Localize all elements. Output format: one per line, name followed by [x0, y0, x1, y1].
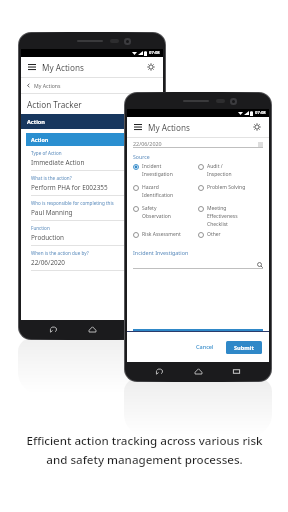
staticText: Other — [207, 231, 221, 238]
button[interactable]: Other — [198, 231, 263, 239]
button[interactable]: Settings — [251, 121, 263, 133]
staticText: Type of Action — [31, 150, 62, 156]
staticText: 22/06/2020 — [133, 140, 162, 147]
staticText: Meeting — [207, 205, 227, 212]
staticText: Action Tracker — [27, 99, 82, 110]
button[interactable]: Menu — [133, 122, 143, 132]
staticText: Checklist — [207, 221, 228, 228]
button[interactable]: Home — [88, 325, 97, 334]
button[interactable]: Menu — [27, 62, 37, 72]
button[interactable]: Action — [27, 114, 163, 129]
button[interactable]: Incident — [133, 163, 198, 179]
staticText: 07:08 — [255, 110, 266, 116]
staticText: Perform PHA for E002355 — [31, 183, 108, 192]
staticText: Action — [27, 118, 45, 126]
button[interactable]: Problem Solving — [198, 184, 263, 192]
staticText: Cancel — [196, 343, 214, 351]
staticText: Paul Manning — [31, 208, 73, 217]
staticText: When is the action due by? — [31, 250, 89, 256]
staticText: Source — [133, 153, 150, 160]
button[interactable]: Risk Assessment — [133, 231, 198, 239]
staticText: Efficient action tracking across various… — [26, 433, 263, 449]
button[interactable]: Recents — [126, 325, 135, 334]
staticText: Incident — [142, 163, 162, 170]
staticText: and safety management processes. — [46, 452, 243, 468]
button[interactable]: Home — [194, 367, 203, 376]
staticText: Immediate Action — [31, 158, 85, 167]
staticText: Problem Solving — [207, 184, 246, 191]
staticText: 07:08 — [149, 50, 160, 56]
button[interactable]: Search — [256, 261, 263, 268]
staticText: Hazard — [142, 184, 159, 191]
staticText: My Actions — [34, 82, 61, 89]
staticText: My Actions — [42, 62, 84, 73]
button[interactable]: Hazard — [133, 184, 198, 200]
button[interactable]: Cancel — [190, 340, 220, 354]
button[interactable]: Settings — [145, 61, 157, 73]
staticText: What is the action? — [31, 175, 72, 181]
button[interactable]: Safety — [133, 205, 198, 221]
staticText: Identification — [142, 192, 174, 199]
button[interactable]: Audit / — [198, 163, 263, 179]
staticText: Effectiveness — [207, 213, 238, 220]
staticText: Submit — [234, 344, 254, 352]
staticText: Who is responsible for completing this — [31, 200, 114, 206]
staticText: Function — [31, 225, 50, 231]
button[interactable]: Action — [26, 133, 158, 271]
button[interactable]: Recents — [232, 367, 241, 376]
staticText: My Actions — [148, 122, 190, 133]
button[interactable]: Meeting — [198, 205, 263, 229]
button[interactable]: Back — [155, 367, 164, 376]
staticText: Audit / — [207, 163, 223, 170]
staticText: Action — [31, 136, 49, 143]
staticText: Risk Assessment — [142, 231, 181, 238]
button[interactable]: Submit — [226, 341, 262, 354]
staticText: Investigation — [142, 171, 173, 178]
staticText: Production — [31, 233, 64, 242]
staticText: Incident Investigation — [133, 249, 189, 256]
staticText: Inspection — [207, 171, 232, 178]
staticText: Observation — [142, 213, 171, 220]
button[interactable]: Back — [49, 325, 58, 334]
staticText: Safety — [142, 205, 157, 212]
staticText: 22/06/2020 — [31, 258, 65, 267]
